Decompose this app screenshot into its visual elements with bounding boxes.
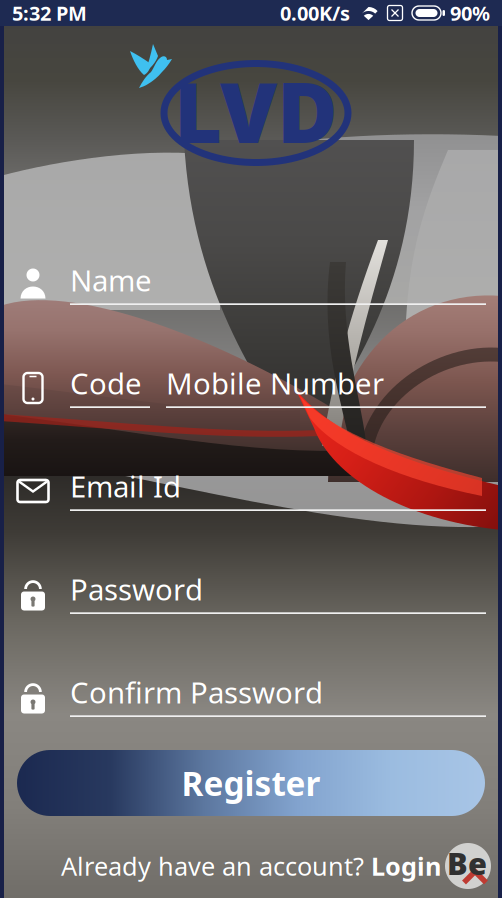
button[interactable]: Mobile Number	[166, 368, 486, 408]
button[interactable]: Password	[0, 574, 502, 614]
staticText: Name	[70, 260, 152, 299]
staticText: 0.00K/s	[280, 0, 350, 26]
staticText: Password	[70, 569, 203, 608]
staticText: Mobile Number	[166, 363, 384, 402]
button[interactable]: Confirm Password	[0, 677, 502, 717]
button[interactable]: Code	[70, 368, 150, 408]
staticText: Login	[371, 849, 441, 883]
staticText: 5:32 PM	[12, 0, 87, 26]
button[interactable]: Register	[17, 750, 485, 816]
staticText: Code	[70, 363, 142, 402]
button[interactable]: Name	[0, 265, 502, 305]
staticText: Confirm Password	[70, 672, 323, 711]
button[interactable]: Already have an account?	[61, 849, 441, 883]
staticText: Email Id	[70, 466, 181, 505]
staticText: Be	[447, 843, 487, 883]
staticText: LVD	[174, 56, 338, 166]
staticText: 90%	[450, 0, 490, 26]
staticText: Register	[181, 761, 320, 805]
staticText: Already have an account?	[61, 849, 371, 883]
button[interactable]: Email Id	[0, 471, 502, 511]
